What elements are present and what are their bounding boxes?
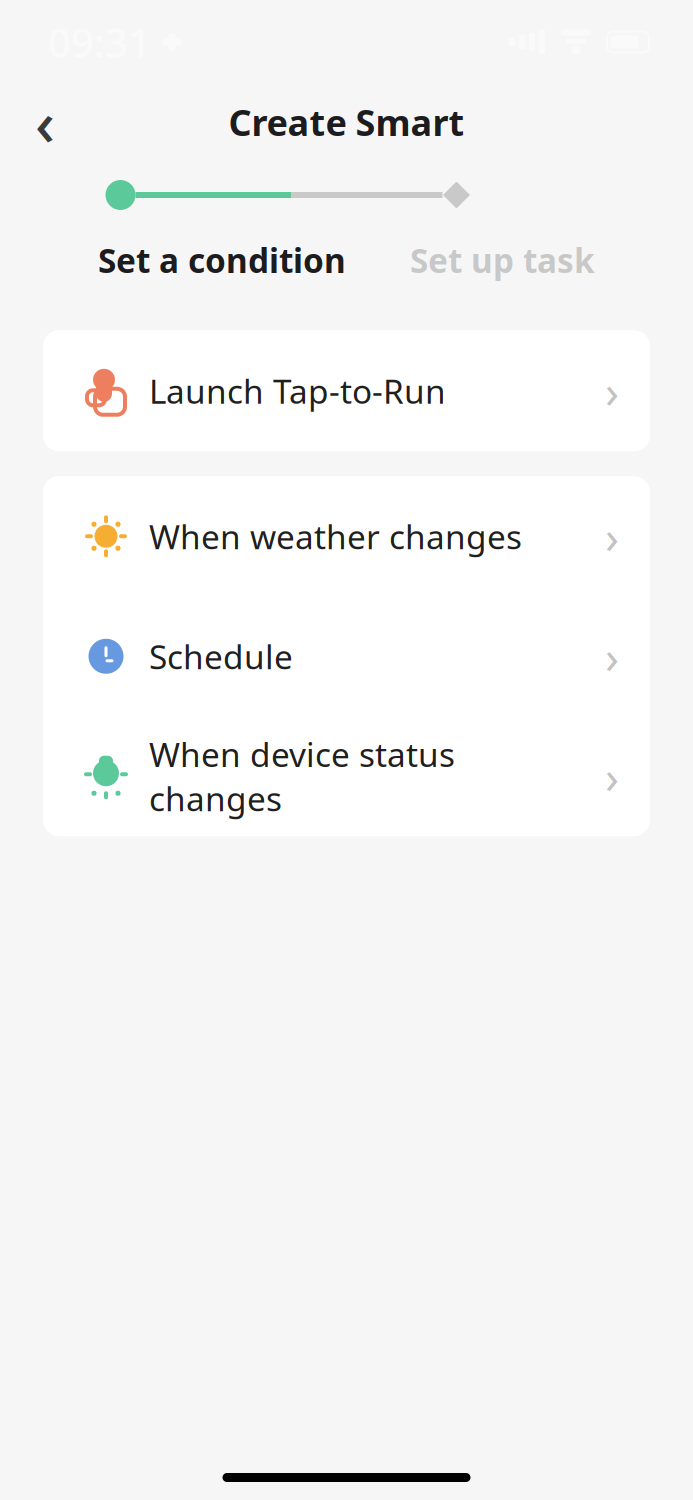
staticText: When weather changes [149,514,522,558]
button[interactable]: When device status changes [43,716,650,836]
staticText: Schedule [149,634,293,678]
staticText: › [605,626,619,686]
button[interactable]: Launch Tap-to-Run [43,330,650,451]
button[interactable]: When weather changes [43,476,650,596]
staticText: › [605,361,619,421]
staticText: Set up task [410,238,595,282]
staticText: When device status changes [149,732,455,820]
button[interactable]: Back [14,91,76,153]
staticText: Launch Tap-to-Run [149,369,446,413]
button[interactable]: Schedule [43,596,650,716]
staticText: Set a condition [98,238,346,282]
staticText: › [605,506,619,566]
staticText: › [605,746,619,806]
staticText: ‹ [35,81,55,163]
staticText: Create Smart [228,98,464,146]
